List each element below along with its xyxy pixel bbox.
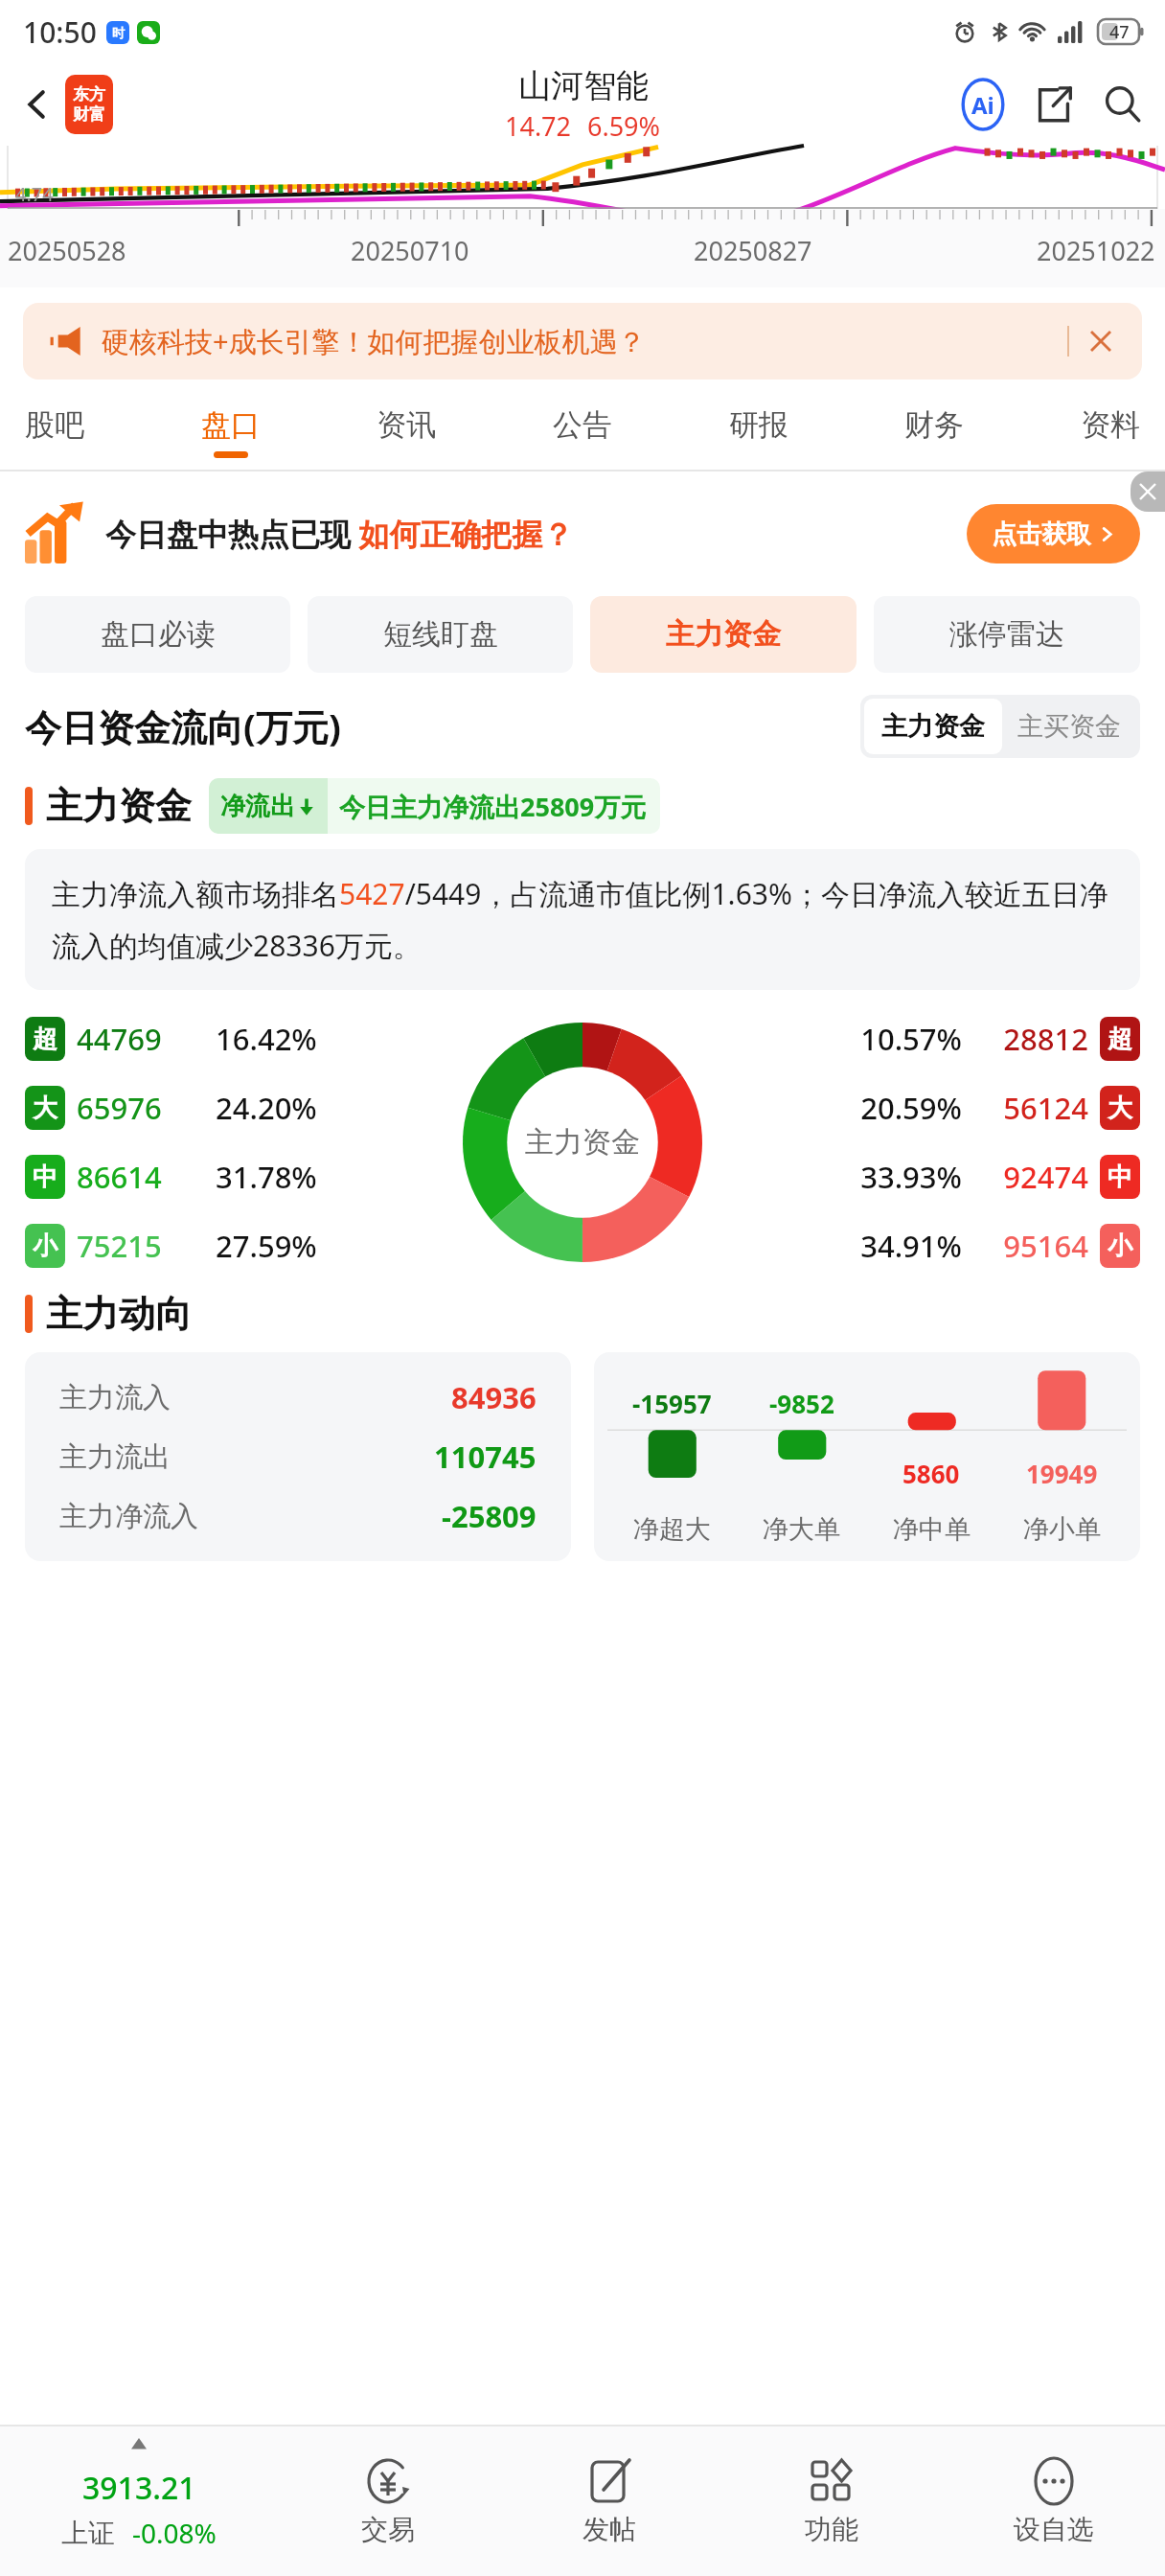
staticText: 公告: [553, 406, 612, 444]
staticText: 涨停雷达: [949, 616, 1064, 653]
button[interactable]: 股吧: [25, 395, 84, 470]
staticText: 研报: [729, 406, 788, 444]
button[interactable]: 资讯: [377, 395, 436, 470]
staticText: 资料: [1081, 406, 1140, 444]
button[interactable]: 资料: [1081, 395, 1140, 470]
staticText: 功能: [805, 2513, 858, 2546]
staticText: -0.08%: [132, 2515, 217, 2551]
staticText: 东方: [73, 84, 105, 104]
staticText: 盘口必读: [101, 616, 216, 653]
staticText: 短线盯盘: [383, 616, 498, 653]
staticText: 财富: [73, 104, 105, 125]
button[interactable]: 3913.21: [0, 2426, 277, 2576]
button[interactable]: 点击获取: [992, 504, 1115, 563]
staticText: 净小单: [1023, 1513, 1101, 1546]
staticText: 10:50: [23, 12, 97, 52]
staticText: 31.78%: [216, 1157, 317, 1197]
staticText: 主力流出: [59, 1439, 171, 1475]
button[interactable]: 涨停雷达: [874, 596, 1140, 673]
staticText: 小: [33, 1230, 57, 1262]
button[interactable]: 设自选: [943, 2426, 1165, 2576]
staticText: 中: [1108, 1161, 1132, 1193]
button[interactable]: 搜索: [1094, 76, 1152, 133]
staticText: Ai: [971, 89, 994, 121]
staticText: 33.93%: [847, 1157, 962, 1197]
staticText: 6.59%: [587, 108, 661, 144]
staticText: 3913.21: [82, 2467, 196, 2509]
staticText: 超: [33, 1023, 57, 1055]
button[interactable]: 短线盯盘: [308, 596, 573, 673]
button[interactable]: 研报: [729, 395, 788, 470]
staticText: 95164: [981, 1226, 1088, 1266]
staticText: 主力资金: [881, 710, 985, 743]
button[interactable]: 东方: [65, 75, 113, 134]
button[interactable]: 主力资金: [881, 699, 985, 754]
staticText: -9852: [769, 1387, 834, 1420]
staticText: 发帖: [582, 2513, 636, 2546]
button[interactable]: 盘口必读: [25, 596, 290, 673]
button[interactable]: 公告: [553, 395, 612, 470]
staticText: 92474: [981, 1157, 1088, 1197]
staticText: 超: [1108, 1023, 1132, 1055]
button[interactable]: AI 助手: [954, 76, 1012, 133]
staticText: 110745: [434, 1437, 537, 1477]
staticText: 主买资金: [1017, 710, 1121, 743]
staticText: 主力流入: [59, 1380, 171, 1415]
staticText: -15957: [632, 1387, 712, 1420]
button[interactable]: 返回: [10, 77, 65, 132]
staticText: 交易: [361, 2513, 415, 2546]
staticText: 小: [1108, 1230, 1132, 1262]
button[interactable]: 功能: [720, 2426, 943, 2576]
staticText: 44769: [77, 1019, 216, 1059]
staticText: 时: [112, 25, 125, 40]
staticText: 盘口: [201, 406, 261, 444]
staticText: 47: [1109, 20, 1130, 44]
staticText: 65976: [77, 1088, 216, 1128]
staticText: 资讯: [377, 406, 436, 444]
staticText: 4.74: [15, 181, 54, 207]
staticText: 20250528: [8, 233, 126, 268]
staticText: 20.59%: [847, 1088, 962, 1128]
staticText: 34.91%: [847, 1226, 962, 1266]
staticText: 20251022: [1037, 233, 1155, 268]
button[interactable]: 硬核科技+成长引擎！如何把握创业板机遇？: [23, 303, 1142, 379]
button[interactable]: 交易: [277, 2426, 498, 2576]
staticText: 主力动向: [46, 1291, 192, 1337]
staticText: 山河智能: [518, 65, 649, 106]
button[interactable]: 关闭广告: [1131, 471, 1165, 512]
staticText: 主力净流入额市场排名5427/5449，占流通市值比例1.63%；今日净流入较近…: [52, 874, 1113, 965]
staticText: 19949: [1026, 1457, 1098, 1490]
button[interactable]: 盘口: [201, 395, 261, 470]
staticText: 上证: [61, 2517, 115, 2550]
button[interactable]: 今日盘中热点已现 如何正确把握？: [25, 471, 1140, 596]
button[interactable]: 主力资金: [590, 596, 857, 673]
button[interactable]: 财务: [904, 395, 964, 470]
staticText: 28812: [981, 1019, 1088, 1059]
button[interactable]: 分享: [1025, 76, 1083, 133]
staticText: 设自选: [1014, 2513, 1094, 2546]
staticText: 主力资金: [46, 783, 192, 829]
staticText: -25809: [442, 1496, 537, 1536]
button[interactable]: 发帖: [498, 2426, 720, 2576]
staticText: 净流出: [220, 791, 295, 822]
staticText: 5860: [902, 1457, 960, 1490]
staticText: 75215: [77, 1226, 216, 1266]
staticText: 大: [33, 1092, 57, 1124]
button[interactable]: 主买资金: [1017, 699, 1121, 754]
staticText: 中: [33, 1161, 57, 1193]
staticText: 27.59%: [216, 1226, 317, 1266]
staticText: 今日盘中热点已现 如何正确把握？: [105, 513, 574, 555]
staticText: 16.42%: [216, 1019, 317, 1059]
staticText: 14.72: [505, 108, 572, 144]
staticText: 56124: [981, 1088, 1088, 1128]
staticText: 主力净流入: [59, 1499, 198, 1534]
staticText: 今日资金流向(万元): [25, 701, 341, 751]
staticText: 84936: [451, 1377, 537, 1417]
staticText: 86614: [77, 1157, 216, 1197]
staticText: 大: [1108, 1092, 1132, 1124]
staticText: 点击获取: [992, 518, 1091, 550]
staticText: 净大单: [763, 1513, 840, 1546]
staticText: 净超大: [633, 1513, 711, 1546]
button[interactable]: 关闭公告: [1083, 323, 1119, 359]
staticText: 20250710: [351, 233, 469, 268]
